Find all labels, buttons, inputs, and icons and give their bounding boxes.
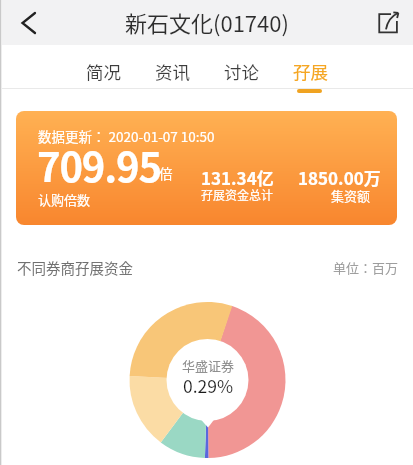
staticText: 资讯 [155,59,190,84]
staticText: 简况 [86,59,121,84]
staticText: 1850.00万 [298,165,381,190]
button[interactable] [374,9,402,37]
staticText: 新石文化(01740) [125,6,289,38]
staticText: 孖展资金总计 [201,186,274,203]
staticText: 709.95 [37,136,161,194]
staticText: 单位：百万 [333,258,399,277]
staticText: 华盛证券 [182,356,235,375]
button[interactable]: 简况 [69,45,138,88]
staticText: 集资额 [331,186,371,205]
staticText: 倍 [159,163,173,183]
button[interactable]: 资讯 [138,45,207,88]
button[interactable] [12,7,44,39]
button[interactable]: 孖展 [276,45,345,88]
staticText: 认购倍数 [38,190,91,209]
staticText: 0.29% [183,373,234,398]
staticText: 不同券商孖展资金 [17,257,133,278]
staticText: 数据更新： 2020-01-07 10:50 [38,126,215,146]
staticText: 孖展 [293,59,328,84]
staticText: 讨论 [224,59,259,84]
staticText: 131.34亿 [201,165,274,190]
button[interactable]: 数据更新： 2020-01-07 10:50 [16,111,397,225]
button[interactable]: 讨论 [207,45,276,88]
